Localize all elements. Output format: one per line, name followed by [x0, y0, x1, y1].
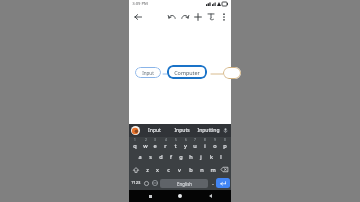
button[interactable]: Recents — [135, 190, 165, 202]
staticText: u — [193, 142, 197, 150]
staticText: 4 — [165, 138, 167, 142]
staticText: Computer — [174, 69, 200, 76]
button[interactable]: b — [185, 163, 196, 176]
staticText: 2 — [145, 138, 147, 142]
staticText: 0 — [224, 138, 226, 142]
button[interactable]: j — [196, 150, 206, 163]
staticText: Inputting — [197, 127, 220, 134]
button[interactable]: x — [152, 163, 163, 176]
staticText: d — [159, 153, 163, 161]
button[interactable]: h — [186, 150, 196, 163]
button[interactable]: l — [216, 150, 226, 163]
button[interactable]: Assistant — [131, 126, 140, 135]
button[interactable]: Shift — [129, 163, 142, 176]
button[interactable]: 5 — [170, 137, 180, 150]
staticText: q — [133, 142, 137, 150]
button[interactable]: c — [163, 163, 174, 176]
button[interactable]: n — [196, 163, 207, 176]
button[interactable]: Undo — [165, 10, 178, 23]
staticText: z — [146, 166, 149, 174]
staticText: 6 — [185, 138, 187, 142]
button[interactable]: More options — [217, 10, 230, 23]
staticText: Input — [148, 127, 161, 134]
button[interactable]: f — [166, 150, 176, 163]
button[interactable]: Inputting — [195, 124, 222, 137]
staticText: p — [223, 142, 227, 150]
button[interactable]: Enter — [216, 178, 230, 188]
button[interactable]: 8 — [200, 137, 210, 150]
button[interactable]: Backspace — [218, 163, 231, 176]
button[interactable]: v — [174, 163, 185, 176]
button[interactable]: Add node — [191, 10, 204, 23]
staticText: 7 — [194, 138, 196, 142]
staticText: o — [213, 142, 217, 150]
staticText: b — [189, 166, 193, 174]
button[interactable]: Emoji — [142, 176, 150, 190]
staticText: h — [189, 153, 193, 161]
button[interactable]: a — [134, 150, 145, 163]
staticText: n — [200, 166, 204, 174]
button[interactable]: ?123 — [130, 176, 142, 190]
staticText: i — [204, 142, 206, 150]
staticText: 1 — [134, 138, 136, 142]
button[interactable]: Input — [135, 67, 161, 78]
button[interactable]: g — [176, 150, 186, 163]
button[interactable]: 2 — [140, 137, 150, 150]
button[interactable]: 1 — [130, 137, 140, 150]
staticText: g — [179, 153, 183, 161]
staticText: 9 — [214, 138, 216, 142]
staticText: f — [170, 153, 172, 161]
button[interactable]: Input — [140, 124, 168, 137]
staticText: t — [174, 142, 177, 150]
button[interactable]: z — [142, 163, 152, 176]
staticText: x — [156, 166, 159, 174]
button[interactable]: English — [160, 179, 208, 188]
button[interactable]: Computer — [167, 65, 207, 79]
button[interactable]: 3 — [150, 137, 160, 150]
button[interactable]: Back — [131, 10, 145, 24]
staticText: 3:09 PM — [132, 1, 148, 7]
button[interactable]: Back — [195, 190, 225, 202]
staticText: r — [164, 142, 167, 150]
button[interactable]: Voice input — [221, 126, 230, 135]
button[interactable]: 0 — [220, 137, 230, 150]
staticText: v — [178, 166, 181, 174]
staticText: s — [149, 153, 152, 161]
staticText: 5 — [175, 138, 177, 142]
staticText: e — [153, 142, 157, 150]
staticText: j — [200, 153, 202, 161]
staticText: w — [143, 142, 148, 150]
staticText: l — [220, 153, 222, 161]
button[interactable]: m — [207, 163, 218, 176]
button[interactable]: Redo — [178, 10, 191, 23]
button[interactable]: . — [209, 176, 216, 190]
staticText: . — [212, 179, 214, 187]
button[interactable]: s — [145, 150, 156, 163]
button[interactable]: Inputs — [168, 124, 195, 137]
staticText: 8 — [204, 138, 206, 142]
staticText: c — [167, 166, 170, 174]
staticText: k — [210, 153, 213, 161]
button[interactable]: Change language — [150, 176, 159, 190]
staticText: Inputs — [174, 127, 190, 134]
staticText: English — [177, 181, 192, 187]
button[interactable]: d — [156, 150, 166, 163]
button[interactable]: Home — [165, 190, 195, 202]
button[interactable]: 6 — [180, 137, 190, 150]
button[interactable]: Node — [223, 67, 241, 79]
staticText: a — [138, 153, 142, 161]
button[interactable]: Style — [204, 10, 217, 23]
staticText: Input — [142, 70, 154, 76]
button[interactable]: 4 — [160, 137, 170, 150]
staticText: y — [184, 142, 187, 150]
staticText: 3 — [154, 138, 156, 142]
button[interactable]: k — [206, 150, 216, 163]
button[interactable]: 9 — [210, 137, 220, 150]
button[interactable]: 7 — [190, 137, 200, 150]
staticText: m — [210, 166, 216, 174]
staticText: ?123 — [131, 180, 141, 186]
